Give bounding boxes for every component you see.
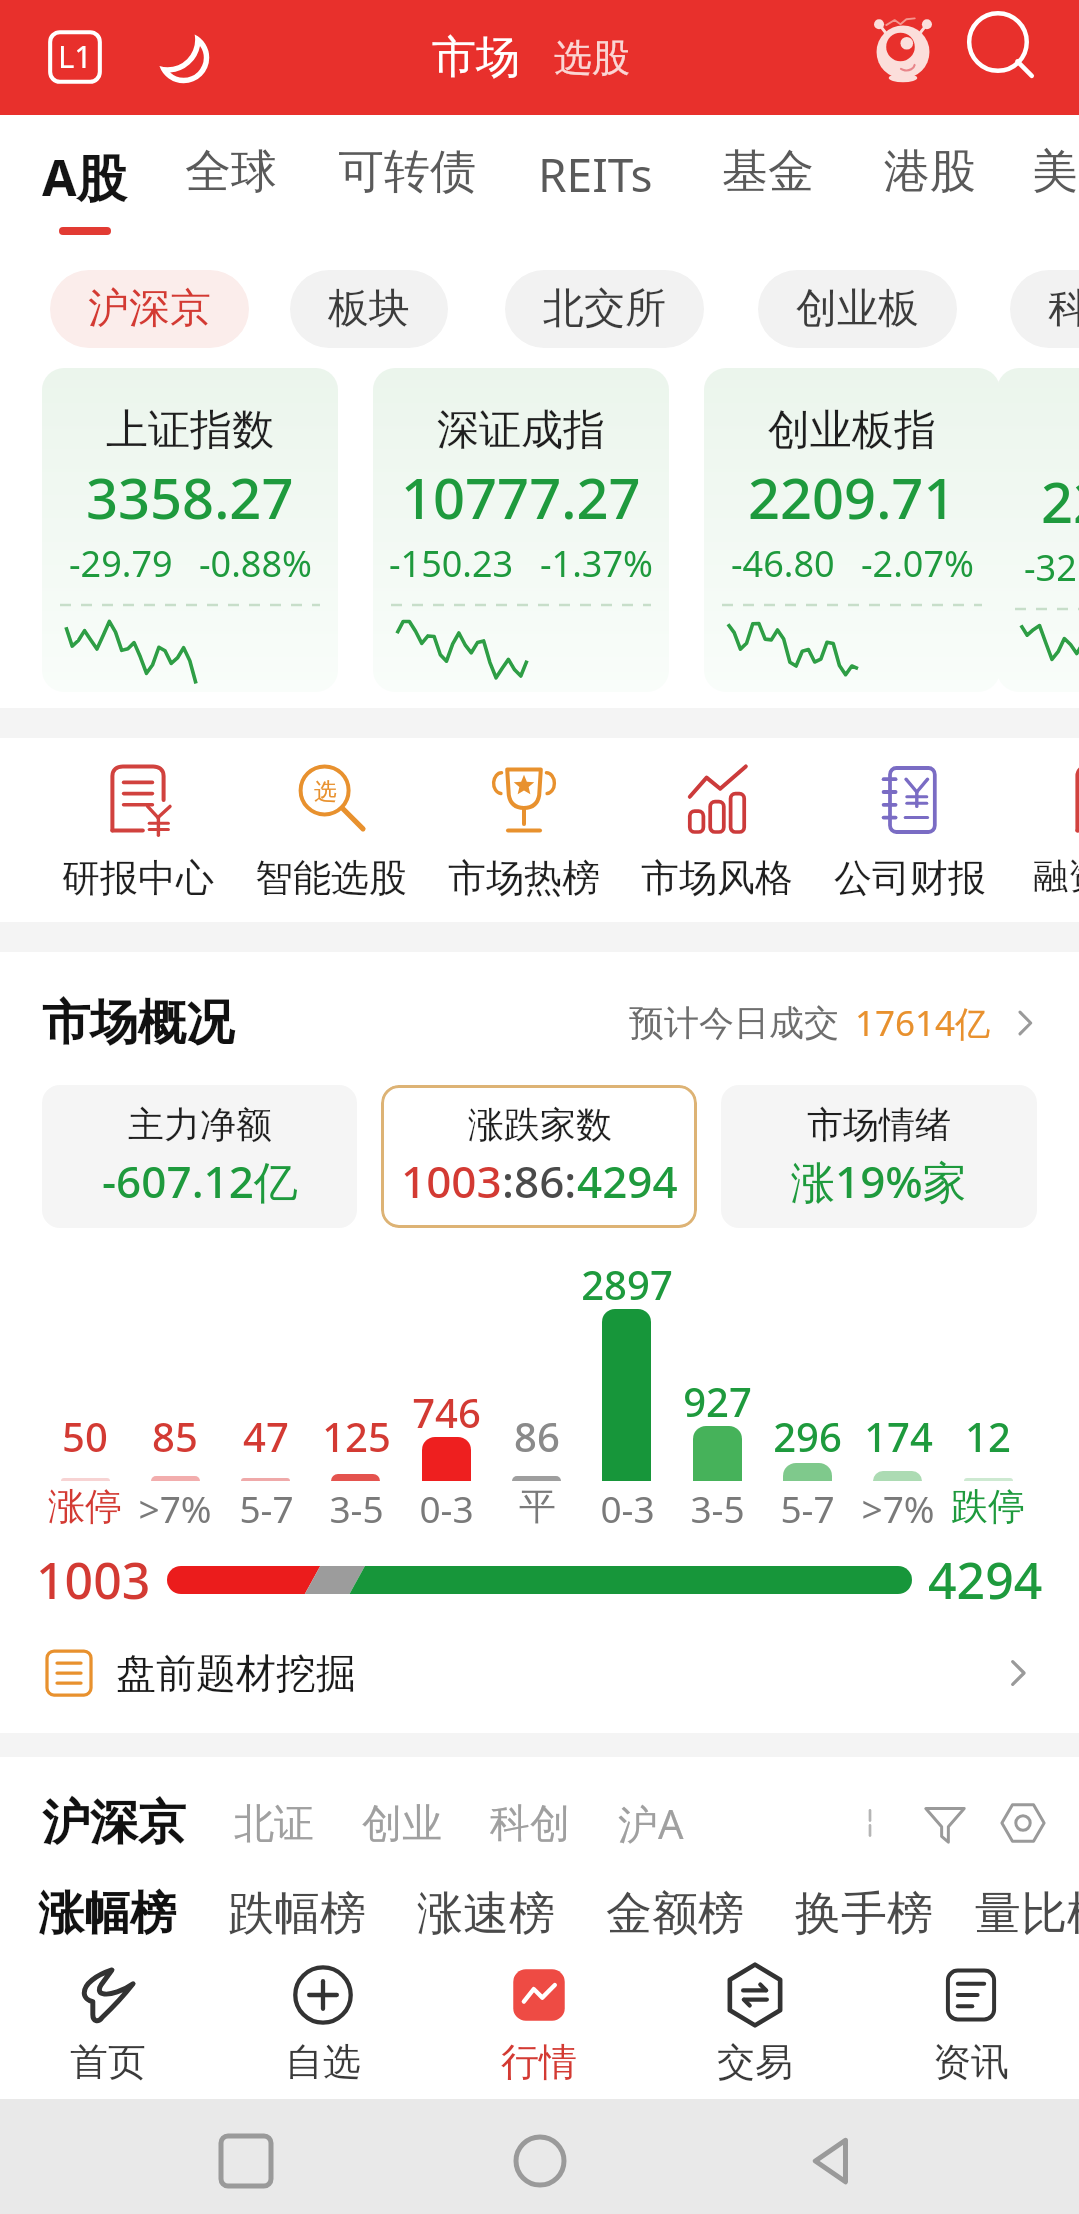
button[interactable]: Settings — [993, 1793, 1053, 1853]
button[interactable]: 量比榜 — [975, 1885, 1079, 1943]
button[interactable]: 沪深京 — [42, 1775, 186, 1871]
staticText: 选 — [314, 777, 337, 806]
staticText: 公司财报 — [834, 854, 986, 902]
staticText: 3-5 — [690, 1483, 745, 1533]
button[interactable]: 研报中心 — [42, 752, 234, 902]
staticText: 科创板 — [1048, 283, 1079, 335]
button[interactable]: 资讯 — [863, 1940, 1079, 2099]
button[interactable]: REITs — [538, 115, 653, 235]
button[interactable]: 公司财报 — [814, 752, 1006, 902]
button[interactable]: 北证 — [234, 1778, 314, 1868]
button[interactable]: 创业板 — [758, 270, 957, 348]
button[interactable]: 涨幅榜 — [38, 1885, 176, 1943]
staticText: 12 — [965, 1409, 1011, 1463]
button[interactable]: Home — [492, 2113, 588, 2209]
staticText: 47 — [243, 1409, 289, 1463]
button[interactable]: 市场风格 — [621, 752, 813, 902]
button[interactable]: 创业板指 — [704, 368, 1000, 692]
staticText: 跌幅榜 — [228, 1885, 366, 1943]
button[interactable]: A股 — [42, 115, 127, 235]
button[interactable]: 市场 — [424, 8, 528, 107]
staticText: 市场风格 — [641, 854, 793, 902]
staticText: 50 — [62, 1409, 108, 1463]
button[interactable]: Filter — [915, 1793, 975, 1853]
staticText: -150.23 — [389, 539, 514, 588]
button[interactable]: Night mode — [148, 22, 218, 92]
staticText: 涨跌家数 — [468, 1102, 612, 1147]
staticText: 125 — [322, 1409, 391, 1463]
button[interactable]: 选 — [235, 752, 427, 902]
staticText: 行情 — [501, 2038, 577, 2086]
staticText: -1.37% — [540, 539, 653, 588]
staticText: 深证成指 — [437, 404, 605, 457]
button[interactable]: 全球 — [185, 115, 277, 235]
button[interactable]: 选股 — [546, 8, 638, 108]
staticText: 上证指数 — [106, 404, 274, 457]
button[interactable]: 港股 — [884, 115, 976, 235]
staticText: 2897 — [581, 1257, 673, 1311]
staticText: -607.12亿 — [102, 1151, 298, 1211]
button[interactable]: 沪A — [618, 1776, 684, 1871]
button[interactable]: 市场情绪 — [721, 1085, 1037, 1228]
button[interactable]: 科创板 — [1010, 270, 1079, 348]
button[interactable]: 基金 — [722, 115, 814, 235]
button[interactable]: Assistant — [858, 7, 948, 97]
button[interactable]: 创业 — [362, 1778, 442, 1868]
button[interactable]: 涨跌家数 — [381, 1085, 697, 1228]
button[interactable]: 涨速榜 — [417, 1885, 555, 1943]
staticText: 746 — [412, 1385, 481, 1439]
staticText: 3-5 — [329, 1483, 384, 1533]
staticText: 85 — [152, 1409, 198, 1463]
button[interactable]: 科创 — [490, 1778, 570, 1868]
staticText: 涨幅榜 — [38, 1885, 176, 1943]
staticText: 17614亿 — [855, 999, 991, 1047]
button[interactable]: 预计今日成交 — [629, 999, 1043, 1047]
button[interactable]: 金额榜 — [606, 1885, 744, 1943]
staticText: 研报中心 — [62, 854, 214, 902]
button[interactable]: 盘前题材挖掘 — [44, 1625, 1037, 1721]
staticText: >7% — [861, 1483, 935, 1533]
button[interactable]: 沪深京 — [50, 270, 249, 348]
staticText: -32.56 — [1024, 543, 1079, 592]
button[interactable]: 板块 — [290, 270, 448, 348]
button[interactable]: 自选 — [215, 1940, 431, 2099]
button[interactable]: 行情 — [431, 1940, 647, 2099]
staticText: 平 — [519, 1483, 556, 1530]
staticText: 5-7 — [239, 1483, 294, 1533]
staticText: 沪深京 — [88, 283, 211, 335]
button[interactable]: 深证成指 — [373, 368, 669, 692]
button[interactable]: 首页 — [0, 1940, 215, 2099]
button[interactable]: 上证指数 — [42, 368, 338, 692]
staticText: 5-7 — [780, 1483, 835, 1533]
staticText: 3358.27 — [86, 459, 294, 535]
button[interactable]: 可转债 — [338, 115, 476, 235]
staticText: 板块 — [328, 283, 410, 335]
staticText: -46.80 — [731, 539, 835, 588]
button[interactable]: 换手榜 — [795, 1885, 933, 1943]
button[interactable]: Back — [785, 2113, 881, 2209]
staticText: 交易 — [717, 2038, 793, 2086]
button[interactable]: Search — [962, 6, 1044, 88]
button[interactable]: Recents — [198, 2113, 294, 2209]
staticText: 预计今日成交 — [629, 1001, 839, 1045]
staticText: 金额榜 — [606, 1885, 744, 1943]
staticText: 基金 — [722, 143, 814, 201]
staticText: 全球 — [185, 143, 277, 201]
staticText: 主力净额 — [128, 1102, 272, 1147]
staticText: 4294 — [577, 1151, 678, 1211]
staticText: 创业板指 — [768, 404, 936, 457]
button[interactable]: 跌幅榜 — [228, 1885, 366, 1943]
staticText: 涨停 — [48, 1483, 122, 1530]
staticText: 港股 — [884, 143, 976, 201]
button[interactable]: 交易 — [647, 1940, 863, 2099]
staticText: 市场情绪 — [807, 1102, 951, 1147]
staticText: 换手榜 — [795, 1885, 933, 1943]
button[interactable]: 北交所 — [505, 270, 704, 348]
button[interactable]: L1 quote level — [40, 22, 110, 92]
button[interactable]: 主力净额 — [42, 1085, 357, 1228]
button[interactable]: 市场热榜 — [428, 752, 620, 902]
button[interactable]: More options — [843, 1796, 897, 1850]
button[interactable]: 美 — [1032, 115, 1078, 235]
button[interactable]: 科创50 — [997, 368, 1079, 692]
staticText: 选股 — [554, 34, 630, 82]
